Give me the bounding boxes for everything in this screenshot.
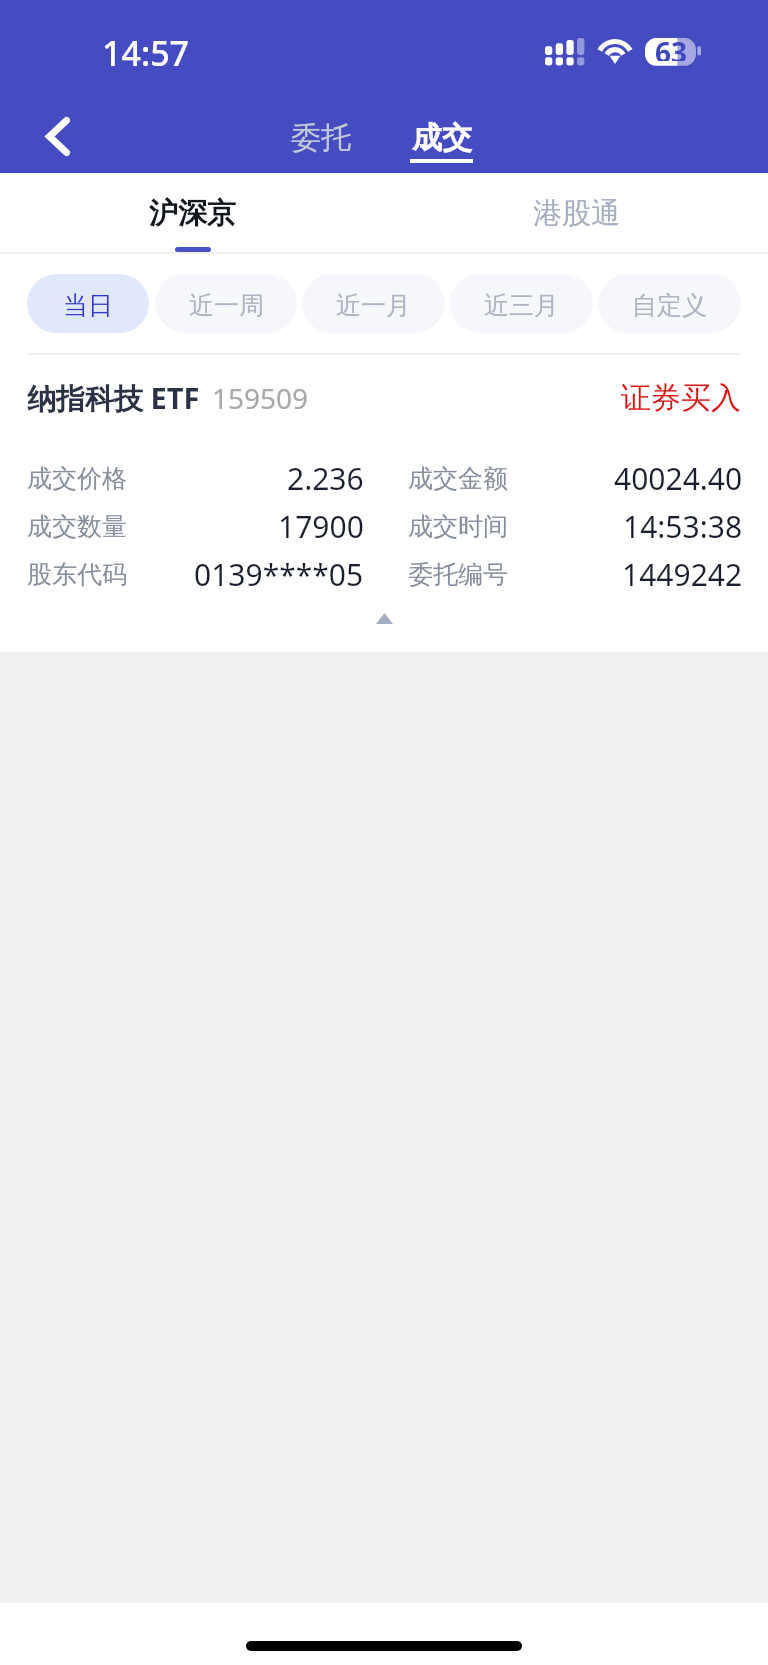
staticText: 40024.40 <box>614 458 743 499</box>
staticText: 成交时间 <box>408 511 508 542</box>
button[interactable]: 近三月 <box>450 274 593 333</box>
button[interactable]: 近一月 <box>302 274 445 333</box>
staticText: 委托编号 <box>408 559 508 590</box>
staticText: 近三月 <box>484 290 559 321</box>
staticText: 近一月 <box>336 290 411 321</box>
staticText: 证券买入 <box>621 379 741 417</box>
staticText: 2.236 <box>287 458 364 499</box>
staticText: 159509 <box>212 379 309 417</box>
button[interactable]: 纳指科技 ETF <box>0 353 768 652</box>
staticText: 港股通 <box>533 195 620 232</box>
staticText: 14:53:38 <box>623 506 743 547</box>
staticText: 近一周 <box>189 290 264 321</box>
staticText: 当日 <box>63 290 113 321</box>
staticText: 0139****05 <box>194 554 364 595</box>
button[interactable]: Collapse details <box>0 598 768 652</box>
button[interactable]: 近一周 <box>155 274 297 333</box>
staticText: 17900 <box>278 506 364 547</box>
staticText: 自定义 <box>632 290 707 321</box>
button[interactable]: 委托 <box>281 119 360 163</box>
staticText: 成交价格 <box>27 463 127 494</box>
button[interactable]: Back <box>25 103 91 169</box>
staticText: 1449242 <box>622 554 743 595</box>
button[interactable]: 自定义 <box>598 274 741 333</box>
staticText: 成交数量 <box>27 511 127 542</box>
staticText: 成交 <box>412 119 472 157</box>
staticText: 股东代码 <box>27 559 127 590</box>
button[interactable]: 沪深京 <box>0 173 384 252</box>
staticText: 14:57 <box>102 30 190 76</box>
button[interactable]: 成交 <box>402 119 481 163</box>
staticText: 成交金额 <box>408 463 508 494</box>
staticText: 63 <box>655 33 688 61</box>
staticText: 纳指科技 ETF <box>27 378 200 418</box>
staticText: 委托 <box>291 119 351 157</box>
button[interactable]: 当日 <box>27 274 149 333</box>
button[interactable]: 港股通 <box>384 173 768 252</box>
staticText: 沪深京 <box>149 195 236 232</box>
